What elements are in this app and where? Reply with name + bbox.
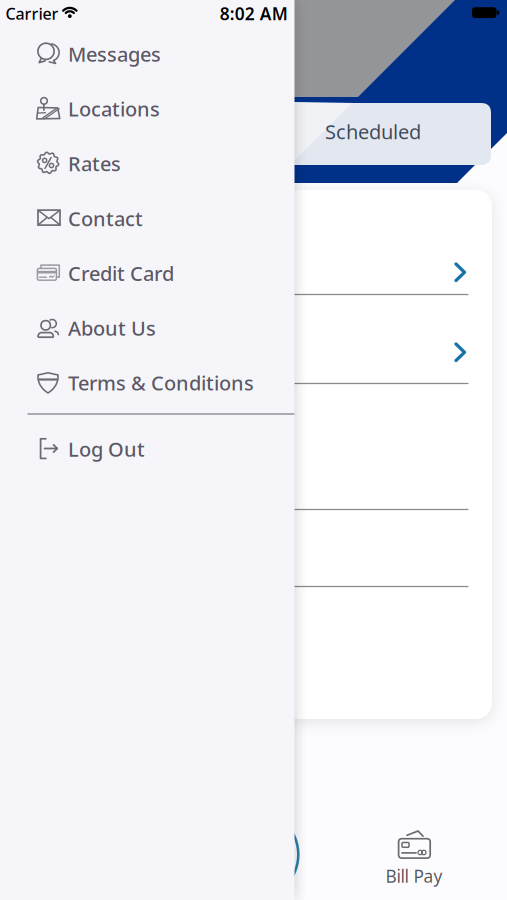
button[interactable]: Select payee — [451, 259, 471, 285]
staticText: Credit Card — [68, 260, 174, 286]
button[interactable]: Terms & Conditions — [0, 356, 294, 410]
staticText: Carrier — [5, 3, 58, 24]
button[interactable]: Pay a Bill — [206, 807, 300, 900]
staticText: Bill Pay — [385, 864, 442, 887]
button[interactable]: Messages — [0, 27, 294, 81]
staticText: 8:02 AM — [220, 2, 288, 25]
staticText: Terms & Conditions — [68, 369, 254, 396]
staticText: Log Out — [68, 436, 145, 462]
button[interactable]: Credit Card — [0, 246, 294, 300]
button[interactable]: Log Out — [0, 422, 294, 476]
staticText: Contact — [68, 205, 143, 232]
button[interactable]: Select account — [451, 339, 471, 365]
staticText: Locations — [68, 95, 160, 122]
staticText: About Us — [68, 315, 156, 341]
button[interactable]: About Us — [0, 301, 294, 355]
staticText: Messages — [68, 41, 161, 67]
button[interactable]: Locations — [0, 82, 294, 136]
staticText: Rates — [68, 150, 121, 177]
button[interactable]: Bill Pay — [359, 827, 469, 889]
staticText: Scheduled — [325, 118, 421, 145]
button[interactable]: Rates — [0, 137, 294, 191]
button[interactable]: Contact — [0, 191, 294, 245]
button[interactable]: Scheduled — [294, 100, 452, 162]
